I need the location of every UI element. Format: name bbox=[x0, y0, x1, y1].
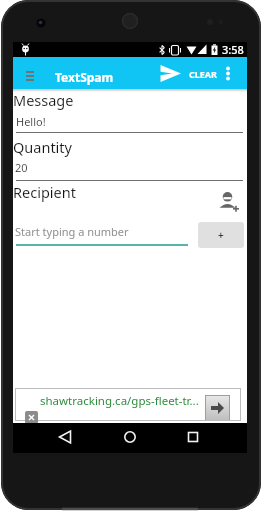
button[interactable]: + bbox=[198, 222, 244, 248]
button[interactable] bbox=[214, 190, 240, 215]
button[interactable] bbox=[13, 423, 91, 453]
button[interactable]: CLEAR bbox=[189, 68, 217, 80]
staticText: Recipient bbox=[13, 182, 76, 202]
button[interactable] bbox=[13, 57, 45, 89]
button[interactable] bbox=[221, 57, 247, 89]
staticText: Quantity bbox=[13, 137, 72, 157]
staticText: + bbox=[218, 228, 224, 242]
button[interactable]: Hello! bbox=[16, 114, 46, 129]
staticText: TextSpam bbox=[55, 69, 114, 85]
button[interactable] bbox=[25, 411, 38, 424]
staticText: 3:58 bbox=[222, 42, 244, 57]
button[interactable]: 20 bbox=[15, 160, 28, 175]
staticText: Message bbox=[13, 90, 74, 110]
button[interactable]: shawtracking.ca/gps-fleet-tr... bbox=[15, 388, 241, 421]
button[interactable] bbox=[91, 423, 169, 453]
button[interactable]: Start typing a number bbox=[15, 224, 129, 239]
button[interactable] bbox=[205, 395, 230, 421]
button[interactable] bbox=[169, 423, 247, 453]
button[interactable] bbox=[157, 64, 183, 84]
staticText: shawtracking.ca/gps-fleet-tr... bbox=[40, 393, 199, 409]
